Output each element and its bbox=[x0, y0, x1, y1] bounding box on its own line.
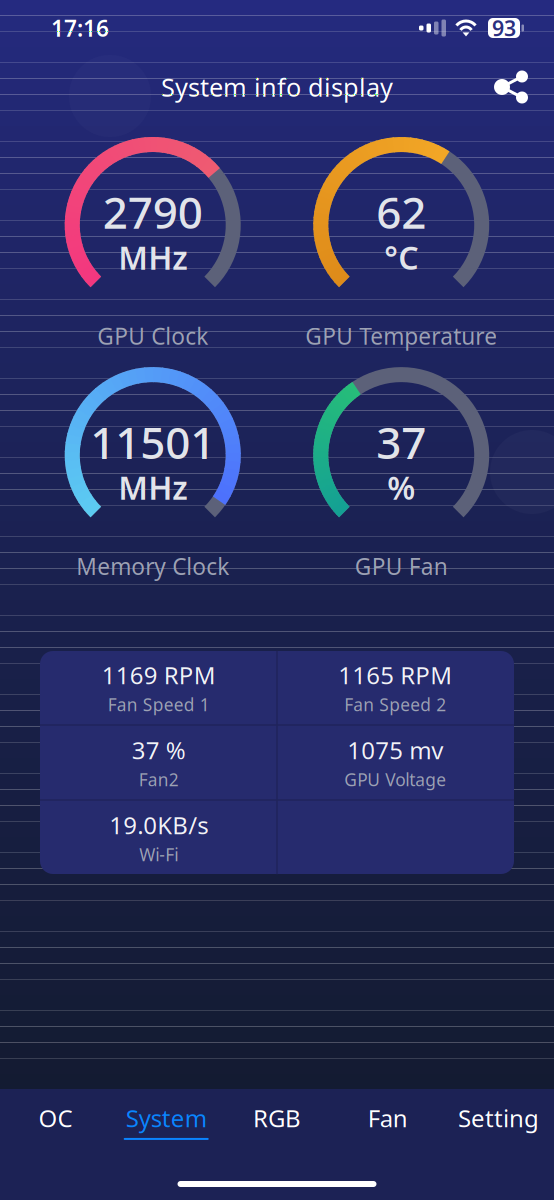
staticText: Fan Speed 1 bbox=[108, 693, 210, 716]
staticText: GPU Fan bbox=[355, 551, 448, 581]
button[interactable]: Setting bbox=[443, 1089, 554, 1151]
staticText: Fan Speed 2 bbox=[344, 693, 446, 716]
staticText: Fan2 bbox=[139, 768, 179, 791]
button[interactable]: OC bbox=[0, 1089, 111, 1151]
staticText: % bbox=[387, 466, 415, 509]
staticText: 11501 bbox=[90, 413, 215, 471]
staticText: System bbox=[126, 1102, 207, 1134]
button[interactable]: RGB bbox=[222, 1089, 332, 1151]
staticText: GPU Clock bbox=[97, 321, 208, 351]
staticText: RGB bbox=[253, 1102, 301, 1134]
button[interactable]: Share bbox=[489, 63, 537, 111]
staticText: GPU Temperature bbox=[305, 321, 497, 351]
staticText: OC bbox=[38, 1102, 72, 1134]
staticText: 1169 RPM bbox=[102, 659, 216, 691]
staticText: System info display bbox=[161, 70, 393, 104]
staticText: Fan bbox=[368, 1102, 408, 1134]
staticText: 2790 bbox=[103, 182, 203, 241]
staticText: 62 bbox=[376, 182, 426, 241]
button[interactable]: Fan bbox=[332, 1089, 443, 1151]
staticText: Wi-Fi bbox=[139, 843, 178, 866]
staticText: 19.0KB/s bbox=[109, 809, 208, 841]
staticText: MHz bbox=[118, 466, 187, 509]
staticText: MHz bbox=[118, 236, 187, 278]
button[interactable]: System bbox=[111, 1089, 222, 1151]
staticText: °C bbox=[384, 236, 418, 278]
staticText: 1075 mv bbox=[347, 734, 443, 766]
staticText: 17:16 bbox=[51, 13, 109, 43]
staticText: 1165 RPM bbox=[338, 659, 452, 691]
staticText: 37 % bbox=[132, 734, 186, 766]
staticText: GPU Voltage bbox=[344, 768, 446, 791]
staticText: 37 bbox=[376, 413, 426, 471]
staticText: Setting bbox=[458, 1102, 539, 1134]
staticText: Memory Clock bbox=[76, 551, 229, 581]
staticText: 93 bbox=[492, 14, 516, 42]
